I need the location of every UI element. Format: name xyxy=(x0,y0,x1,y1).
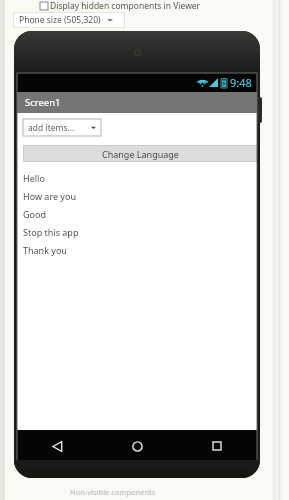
button[interactable]: Good xyxy=(23,205,257,223)
staticText: Phone size (505,320) xyxy=(19,14,101,26)
staticText: Display hidden components in Viewer xyxy=(50,0,201,12)
staticText: Good xyxy=(23,208,46,220)
staticText: 9:48 xyxy=(230,75,252,90)
button[interactable]: Back xyxy=(17,430,97,462)
staticText: Screen1 xyxy=(25,96,61,109)
button[interactable]: Recent apps xyxy=(177,430,257,462)
staticText: Non-visible components xyxy=(70,487,156,497)
button[interactable]: Phone size (505,320) xyxy=(13,12,125,28)
button[interactable] xyxy=(40,2,48,10)
staticText: Change Language xyxy=(102,148,179,160)
button[interactable]: How are you xyxy=(23,187,257,205)
button[interactable]: Hello xyxy=(23,169,257,187)
staticText: Thank you xyxy=(23,244,67,256)
button[interactable]: Home xyxy=(97,430,177,462)
staticText: How are you xyxy=(23,190,76,202)
button[interactable]: Stop this app xyxy=(23,223,257,241)
staticText: Hello xyxy=(23,172,45,184)
staticText: Stop this app xyxy=(23,226,79,238)
button[interactable]: Change Language xyxy=(23,145,257,162)
staticText: add items... xyxy=(28,122,75,134)
button[interactable]: Thank you xyxy=(23,241,257,259)
button[interactable]: add items... xyxy=(23,119,101,136)
